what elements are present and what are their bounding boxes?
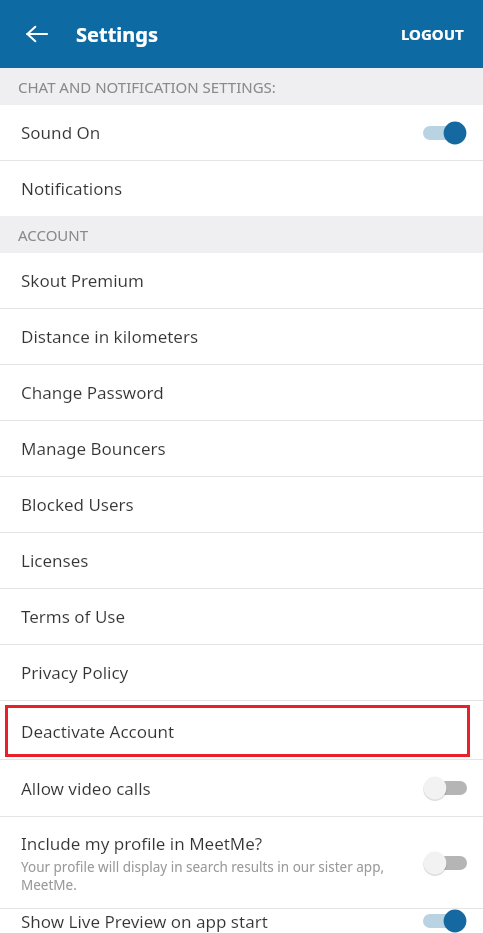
button[interactable]: Change Password [0, 365, 483, 420]
staticText: Notifications [21, 177, 123, 200]
button[interactable]: Include my profile in MeetMe? [0, 817, 483, 908]
staticText: Blocked Users [21, 493, 134, 516]
staticText: Show Live Preview on app start [21, 910, 268, 933]
staticText: Terms of Use [21, 605, 126, 628]
button[interactable]: Distance in kilometers [0, 309, 483, 364]
button[interactable]: Toggle on [419, 113, 471, 153]
button[interactable]: Toggle on [419, 909, 471, 933]
staticText: Settings [76, 21, 158, 48]
button[interactable]: Skout Premium [0, 253, 483, 308]
button[interactable]: Back [13, 10, 61, 58]
staticText: Change Password [21, 381, 164, 404]
button[interactable]: Show Live Preview on app start [0, 909, 483, 933]
button[interactable]: Manage Bouncers [0, 421, 483, 476]
staticText: Privacy Policy [21, 661, 129, 684]
button[interactable]: LOGOUT [397, 14, 468, 54]
button[interactable]: Toggle off [419, 768, 471, 808]
staticText: Skout Premium [21, 269, 144, 292]
button[interactable]: Toggle off [419, 843, 471, 883]
button[interactable]: Licenses [0, 533, 483, 588]
button[interactable]: Allow video calls [0, 760, 483, 816]
staticText: Include my profile in MeetMe? [21, 832, 263, 855]
staticText: Deactivate Account [21, 720, 175, 743]
staticText: Licenses [21, 549, 89, 572]
staticText: Allow video calls [21, 777, 151, 800]
button[interactable]: Deactivate Account [5, 705, 470, 757]
button[interactable]: Blocked Users [0, 477, 483, 532]
staticText: LOGOUT [401, 24, 464, 44]
button[interactable]: Notifications [0, 161, 483, 216]
staticText: Distance in kilometers [21, 325, 199, 348]
button[interactable]: Privacy Policy [0, 645, 483, 700]
button[interactable]: Terms of Use [0, 589, 483, 644]
staticText: Your profile will display in search resu… [21, 858, 413, 894]
button[interactable]: Sound On [0, 105, 483, 160]
staticText: Manage Bouncers [21, 437, 166, 460]
staticText: CHAT AND NOTIFICATION SETTINGS: [18, 77, 276, 97]
staticText: Sound On [21, 121, 101, 144]
staticText: ACCOUNT [18, 225, 89, 245]
